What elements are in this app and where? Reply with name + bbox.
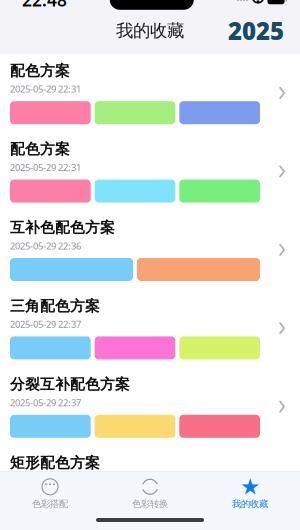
button[interactable]: 三角配色方案 [0,289,300,367]
staticText: 互补色配色方案 [10,219,115,237]
staticText: 2025-05-29 22:37 [10,396,81,409]
button[interactable]: ★ [200,478,300,510]
staticText: 我的收藏 [116,20,184,41]
staticText: ★ [240,474,260,500]
staticText: 矩形配色方案 [10,454,100,472]
staticText: 2025-05-29 22:31 [10,161,81,174]
staticText: 色彩搭配 [32,498,68,510]
staticText: 2025-05-29 22:31 [10,83,81,95]
staticText: 22:48 [22,0,67,11]
button[interactable]: 互补色配色方案 [0,211,300,289]
button[interactable]: 2025 [226,15,286,47]
staticText: 配色方案 [10,62,70,80]
staticText: 2025-05-29 22:37 [10,475,81,487]
staticText: 2025 [228,15,284,47]
staticText: 配色方案 [10,140,70,158]
staticText: 我的收藏 [232,498,268,510]
button[interactable]: 配色方案 [0,132,300,211]
staticText: 2025-05-29 22:36 [10,240,81,252]
staticText: •••• [236,0,248,5]
button[interactable]: 色彩转换 [100,478,200,510]
button[interactable]: 色彩搭配 [0,478,100,510]
staticText: 2025-05-29 22:37 [10,318,81,330]
button[interactable]: 配色方案 [0,54,300,132]
staticText: 三角配色方案 [10,297,100,315]
button[interactable]: 矩形配色方案 [0,446,300,524]
staticText: 分裂互补配色方案 [10,375,130,393]
staticText: 色彩转换 [132,498,168,510]
button[interactable]: 分裂互补配色方案 [0,367,300,446]
